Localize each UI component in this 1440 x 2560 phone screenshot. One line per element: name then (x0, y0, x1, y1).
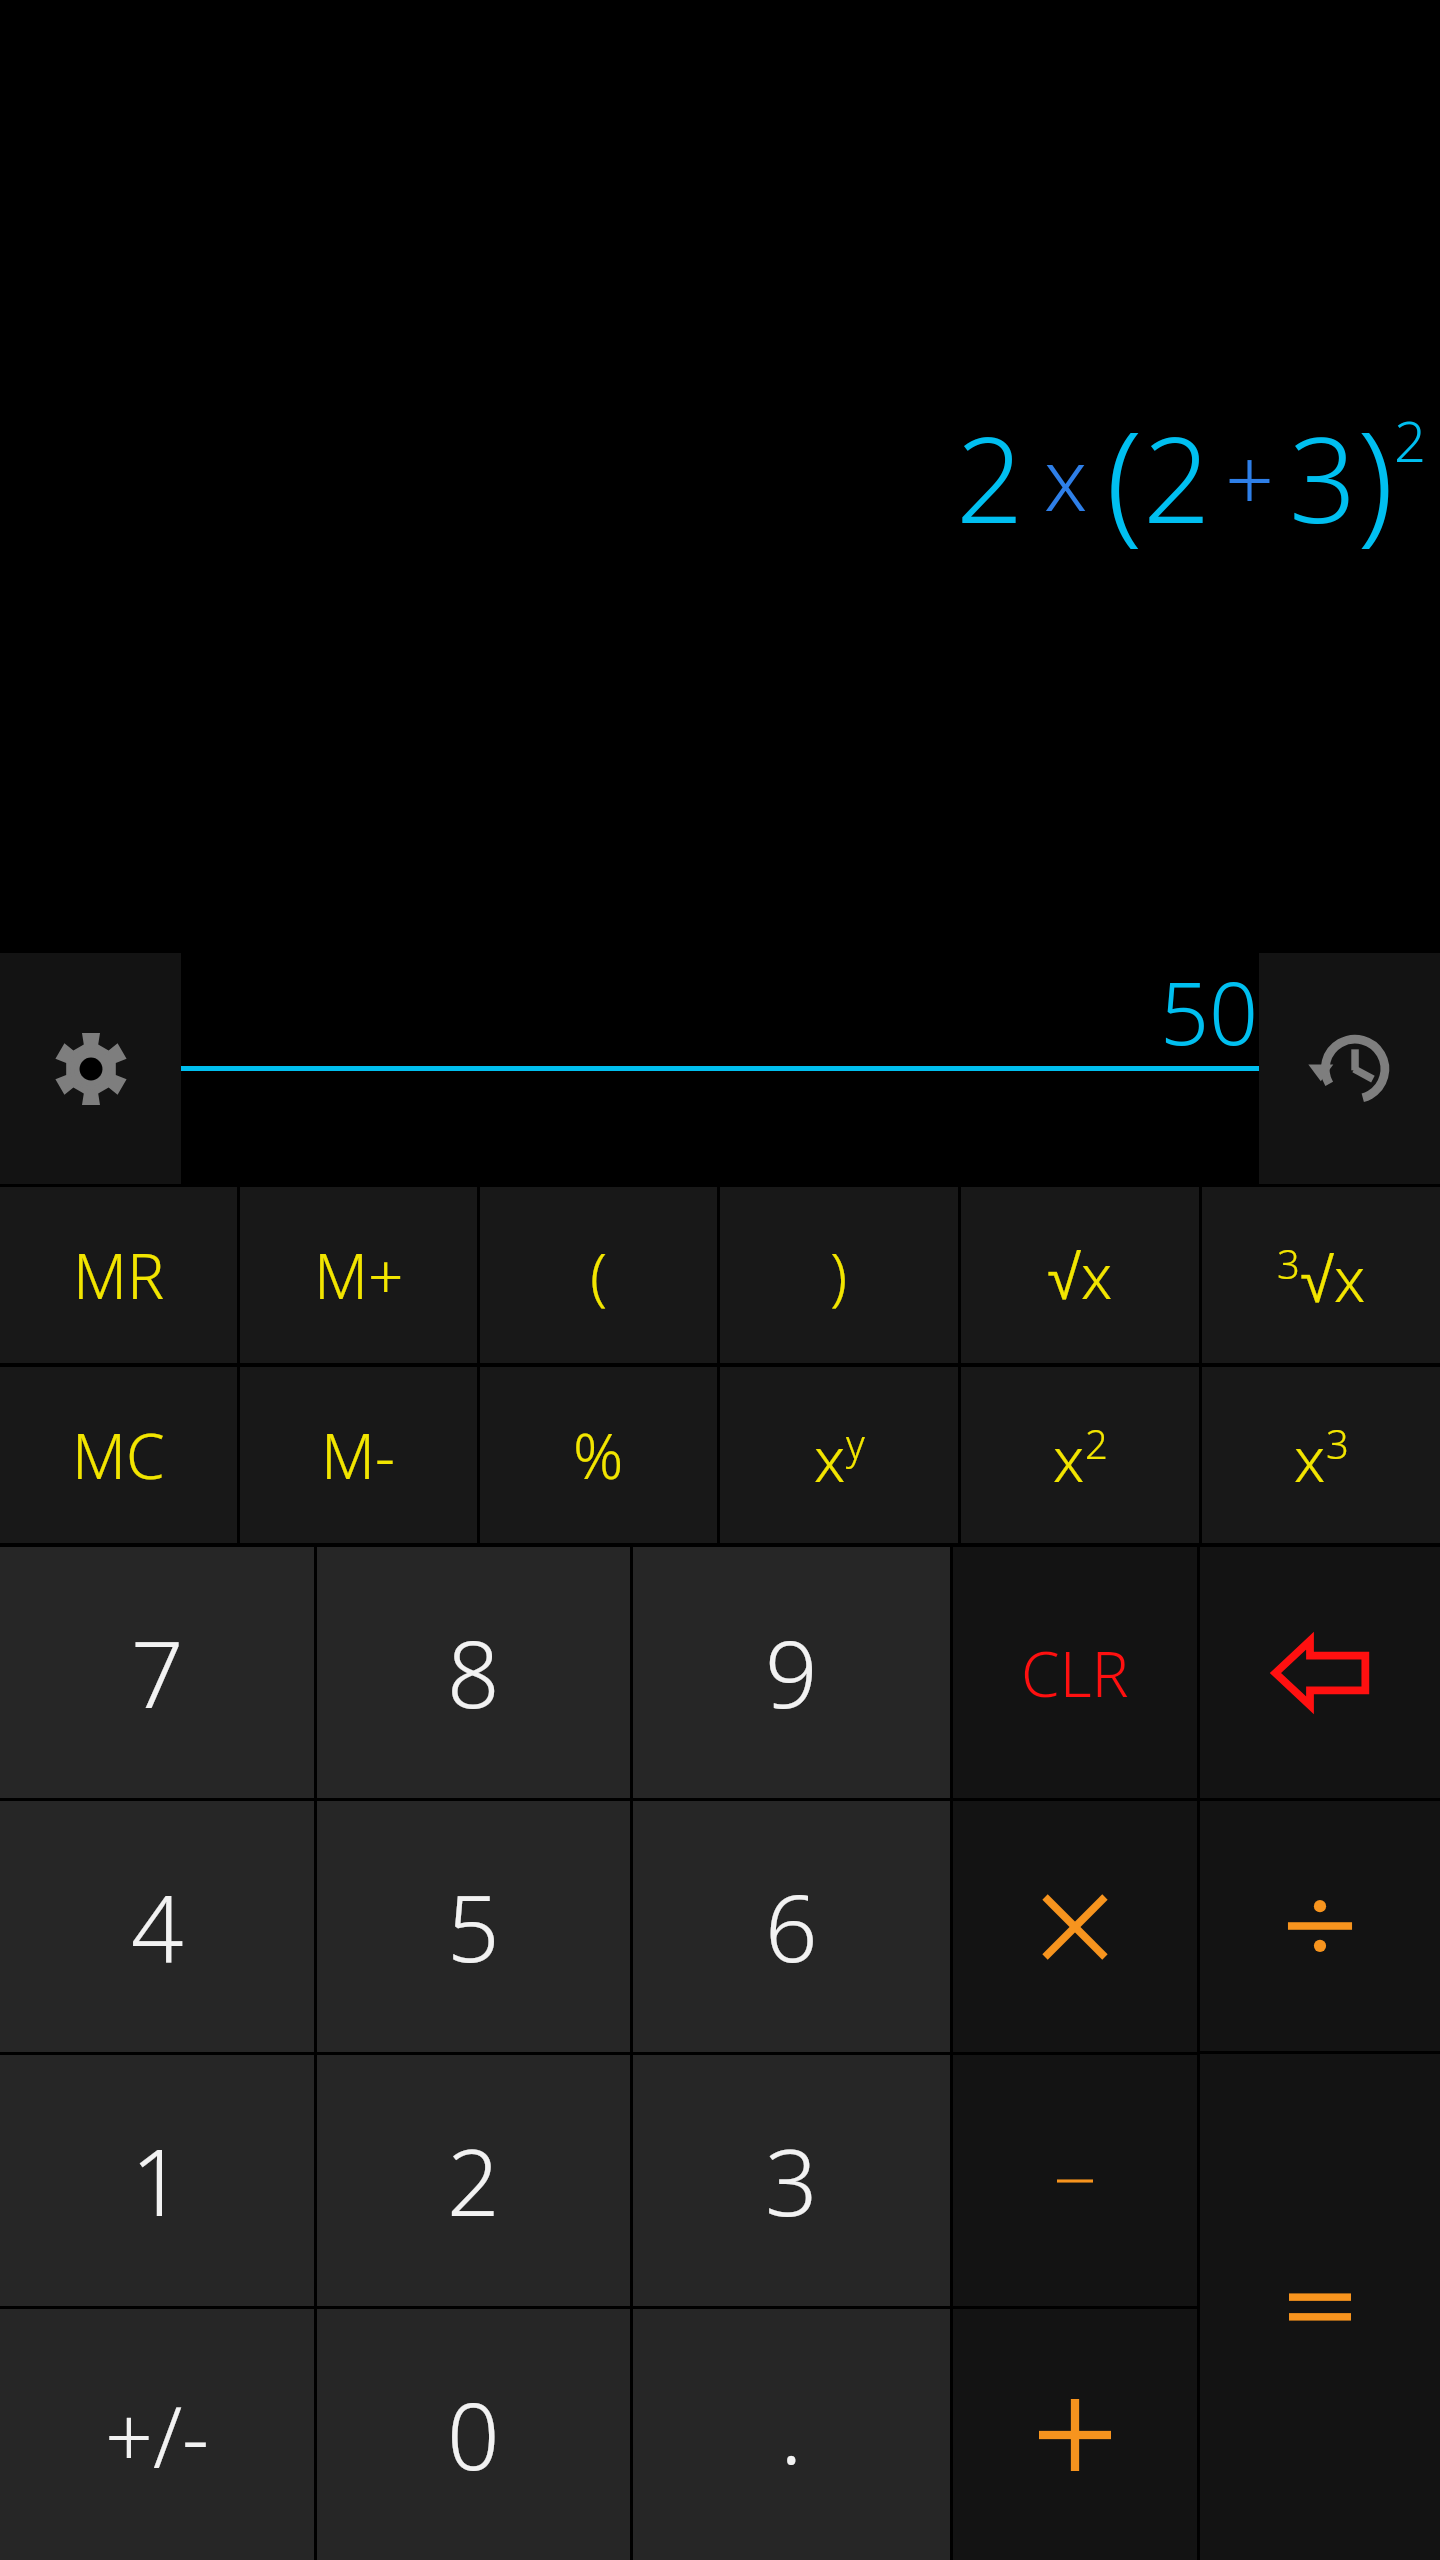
staticText: 3 (765, 2118, 818, 2243)
button[interactable]: Subtract (953, 2055, 1197, 2306)
staticText: ) (830, 1233, 848, 1317)
button[interactable]: 8 (317, 1547, 630, 1798)
staticText: 6 (765, 1864, 818, 1989)
button[interactable]: 6 (633, 1801, 950, 2052)
button[interactable]: % (480, 1367, 717, 1543)
button[interactable]: . (633, 2309, 950, 2560)
staticText: . (780, 2366, 803, 2476)
staticText: 4 (131, 1864, 184, 1989)
staticText: 2 (1085, 1416, 1108, 1470)
staticText: x (1053, 1416, 1085, 1494)
button[interactable]: ( (480, 1187, 717, 1363)
staticText: y (846, 1416, 865, 1470)
staticText: x (814, 1416, 846, 1494)
staticText: ) (1357, 387, 1394, 567)
staticText: MC (72, 1413, 165, 1497)
staticText: 3 (1326, 1416, 1349, 1470)
staticText: √x (1047, 1233, 1113, 1317)
button[interactable]: +/- (0, 2309, 314, 2560)
button[interactable]: 5 (317, 1801, 630, 2052)
button[interactable]: 9 (633, 1547, 950, 1798)
staticText: 2 (1394, 402, 1426, 478)
button[interactable]: Multiply (953, 1801, 1197, 2052)
button[interactable]: 7 (0, 1547, 314, 1798)
button[interactable]: Add (953, 2309, 1197, 2560)
button[interactable]: History (1259, 953, 1440, 1184)
staticText: MR (73, 1233, 165, 1317)
button[interactable]: M+ (240, 1187, 477, 1363)
button[interactable]: MC (0, 1367, 237, 1543)
staticText: 5 (447, 1864, 500, 1989)
staticText: M+ (314, 1233, 404, 1317)
staticText: + (1225, 419, 1275, 536)
button[interactable]: x (720, 1367, 958, 1543)
button[interactable]: Divide (1200, 1801, 1440, 2051)
staticText: √x (1300, 1236, 1366, 1314)
button[interactable]: 3 (1202, 1187, 1440, 1363)
staticText: x (1044, 419, 1088, 536)
staticText: +/- (105, 2378, 210, 2492)
button[interactable]: Settings (0, 953, 181, 1184)
button[interactable]: M- (240, 1367, 477, 1543)
button[interactable]: 3 (633, 2055, 950, 2306)
staticText: 0 (447, 2372, 500, 2497)
staticText: % (573, 1413, 624, 1497)
staticText: x (1294, 1416, 1326, 1494)
staticText: CLR (1021, 1631, 1129, 1715)
staticText: 8 (447, 1610, 500, 1735)
staticText: M- (321, 1413, 396, 1497)
button[interactable]: 0 (317, 2309, 630, 2560)
button[interactable]: CLR (953, 1547, 1197, 1798)
button[interactable]: ) (720, 1187, 958, 1363)
staticText: 2 (1143, 397, 1211, 558)
button[interactable]: x (961, 1367, 1199, 1543)
staticText: ( (590, 1233, 608, 1317)
button[interactable]: x (1202, 1367, 1440, 1543)
button[interactable]: 2 (317, 2055, 630, 2306)
staticText: 7 (131, 1610, 184, 1735)
staticText: 2 (447, 2118, 500, 2243)
staticText: 3 (1277, 1236, 1300, 1290)
button[interactable]: 1 (0, 2055, 314, 2306)
staticText: 50 (1160, 953, 1259, 1066)
button[interactable]: Backspace (1200, 1547, 1440, 1798)
staticText: 1 (131, 2118, 184, 2243)
button[interactable]: 4 (0, 1801, 314, 2052)
button[interactable]: MR (0, 1187, 237, 1363)
button[interactable]: Equals (1200, 2054, 1440, 2560)
staticText: 2 (956, 397, 1024, 558)
staticText: 9 (765, 1610, 818, 1735)
staticText: 3 (1289, 397, 1357, 558)
staticText: ( (1106, 387, 1143, 567)
button[interactable]: √x (961, 1187, 1199, 1363)
